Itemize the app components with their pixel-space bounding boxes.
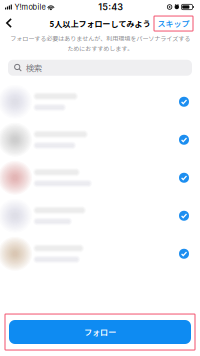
staticText: スキップ	[157, 18, 189, 29]
button[interactable]: フォロー	[9, 320, 191, 344]
staticText: フォローする必要はありませんが、利用環境をパーソナライズするためにおすすめします…	[10, 34, 190, 53]
button[interactable]	[0, 121, 200, 159]
staticText: 5人以上フォローしてみよう	[49, 18, 150, 29]
button[interactable]: 戻る	[0, 14, 22, 33]
button[interactable]	[0, 197, 200, 235]
button[interactable]	[0, 83, 200, 121]
button[interactable]: スキップ	[154, 16, 193, 31]
staticText: 検索	[26, 62, 42, 74]
button[interactable]	[0, 159, 200, 197]
staticText: 15:43	[98, 1, 123, 12]
staticText: フォロー	[84, 326, 116, 338]
staticText: Y!mobile	[14, 2, 45, 11]
button[interactable]	[0, 235, 200, 273]
